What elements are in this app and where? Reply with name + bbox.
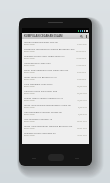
staticText: 9 Feb 2015	[77, 71, 87, 73]
staticText: Berita Islam	[24, 78, 35, 81]
staticText: 8 Jan 2015	[78, 106, 87, 108]
button[interactable]: Kelebihan Tersembunyi Dalam Bersabar Lag…	[22, 46, 89, 53]
button[interactable]: Nasihat Untuk Para Isteri Kita	[22, 88, 89, 95]
button[interactable]: Kisah Kita Membaca Satu Demi Satu Itu	[22, 67, 89, 74]
staticText: Ingat Tujuh Hal Berikut Ini Ya	[24, 75, 57, 78]
staticText: Inilah Yang Membuat Manusia Beriman Itu	[24, 124, 73, 127]
button[interactable]: More options	[84, 34, 89, 39]
staticText: KUMPULAN CEGAHAN ISLAM	[24, 34, 63, 38]
staticText: 14 Feb 2015	[76, 57, 87, 59]
button[interactable]: Search	[78, 33, 84, 39]
staticText: 20 Dis 2014	[77, 127, 87, 129]
staticText: Berita Islam	[24, 50, 35, 53]
staticText: Berita Islam	[24, 43, 35, 46]
staticText: Sebagai Orang Yang Baik Ini	[24, 131, 56, 134]
staticText: Kisah Kita Membaca Satu Demi Satu Itu	[24, 68, 69, 71]
button[interactable]: Cara Mendidik Anak Kecil	[22, 81, 89, 88]
staticText: Berita Islam	[24, 57, 35, 60]
staticText: Berita Islam	[24, 64, 35, 67]
staticText: Sebagai Orang Yang Tinggi Iman Ini	[24, 54, 65, 57]
button[interactable]: Mesej Terpenting Buat Kita Ini	[22, 39, 89, 46]
staticText: Berita Islam	[24, 99, 35, 102]
staticText: Mesej Terpenting Buat Kita Ini	[24, 40, 58, 43]
staticText: Nasihat Untuk Para Isteri Kita	[24, 89, 58, 92]
button[interactable]: Inilah Yang Membuat Manusia Beriman Itu	[22, 123, 89, 130]
button[interactable]: Ingat Tujuh Hal Berikut Ini Ya	[22, 74, 89, 81]
staticText: Berita Islam	[24, 106, 35, 109]
staticText: Insan Yang Senang Membangun Umat Ini	[24, 103, 71, 106]
staticText: Berita Islam	[24, 85, 35, 88]
staticText: Berita Islam	[24, 134, 35, 137]
button[interactable]: Insan Yang Senang Membangun Umat Ini	[22, 102, 89, 109]
staticText: 22 Jan 2015	[77, 92, 87, 94]
staticText: Hari Bersegera Menuju Syurga Ini	[24, 110, 62, 113]
staticText: 29 Jan 2015	[77, 85, 87, 87]
staticText: Berita Islam	[24, 92, 35, 95]
staticText: 2 Mac 2015	[77, 43, 87, 45]
staticText: 20 Feb 2015	[76, 50, 87, 52]
staticText: Berita Islam	[24, 113, 35, 116]
staticText: 28 Dis 2014	[77, 120, 87, 122]
staticText: Awas Bahaya Lidah Kita	[24, 61, 51, 64]
staticText: Kelebihan Tersembunyi Dalam Bersabar Lag…	[24, 47, 75, 50]
button[interactable]: Hari Bersegera Menuju Syurga Ini	[22, 109, 89, 116]
staticText: Orang Hebat Adalah Mereka Itu Ya	[24, 96, 63, 99]
staticText: 3 Feb 2015	[77, 78, 87, 80]
button[interactable]: Apa Maafkan Lakukan Ya	[22, 116, 89, 123]
staticText: 14 Jan 2015	[77, 99, 87, 101]
staticText: Cara Mendidik Anak Kecil	[24, 82, 53, 85]
button[interactable]: Sebagai Orang Yang Tinggi Iman Ini	[22, 53, 89, 60]
staticText: 11 Feb 2015	[76, 64, 87, 66]
staticText: 2 Jan 2015	[78, 113, 87, 115]
button[interactable]: Orang Hebat Adalah Mereka Itu Ya	[22, 95, 89, 102]
button[interactable]: Sebagai Orang Yang Baik Ini	[22, 130, 89, 137]
staticText: Berita Islam	[24, 71, 35, 74]
staticText: Berita Islam	[24, 120, 35, 123]
staticText: Berita Islam	[24, 127, 35, 130]
staticText: Apa Maafkan Lakukan Ya	[24, 117, 52, 120]
button[interactable]: Awas Bahaya Lidah Kita	[22, 60, 89, 67]
staticText: 12 Dis 2014	[77, 134, 87, 136]
